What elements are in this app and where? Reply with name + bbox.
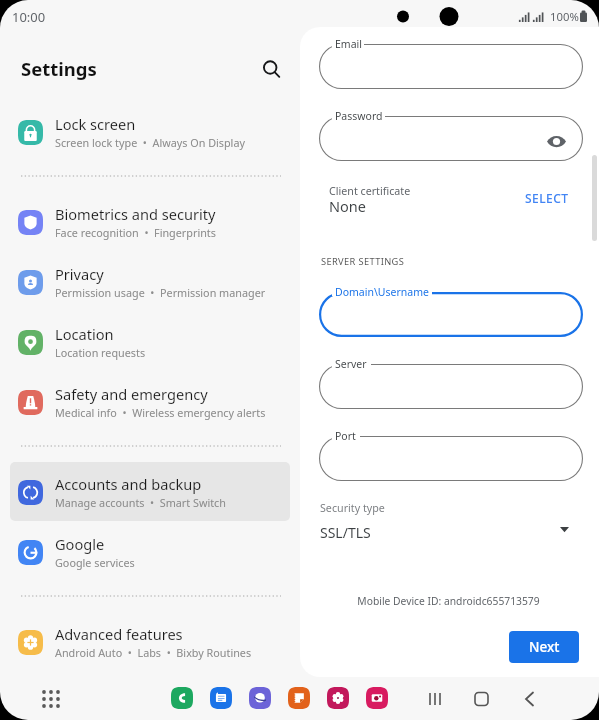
staticText: Biometrics and security [55, 204, 216, 224]
button[interactable]: camera [366, 687, 388, 709]
button[interactable]: Privacy [10, 252, 290, 311]
staticText: Location [55, 324, 114, 344]
button[interactable]: SELECT [521, 186, 573, 210]
button[interactable]: Server [319, 364, 583, 409]
staticText: Location requests [55, 345, 146, 360]
staticText: SELECT [525, 190, 569, 206]
staticText: Screen lock type • Always On Display [55, 135, 245, 150]
button[interactable]: Location [10, 312, 290, 371]
staticText: Lock screen [55, 114, 136, 134]
staticText: None [329, 196, 366, 216]
button[interactable]: notes [288, 687, 310, 709]
staticText: Face recognition • Fingerprints [55, 225, 216, 240]
staticText: Accounts and backup [55, 474, 202, 494]
staticText: 10:00 [12, 8, 46, 26]
staticText: Settings [21, 56, 97, 81]
button[interactable]: Accounts and backup [10, 462, 290, 521]
staticText: Password [335, 109, 383, 123]
button[interactable]: Domain\Username [319, 292, 583, 337]
button[interactable]: Email [319, 44, 583, 89]
button[interactable]: Search [254, 50, 290, 86]
other: Show password [547, 132, 566, 151]
button[interactable]: store [327, 687, 349, 709]
staticText: Port [335, 429, 356, 443]
staticText: Google [55, 534, 105, 554]
button[interactable]: Next [509, 631, 579, 663]
staticText: Permission usage • Permission manager [55, 285, 266, 300]
staticText: Advanced features [55, 624, 183, 644]
staticText: Mobile Device ID: androidc655713579 [300, 594, 597, 608]
button[interactable]: Biometrics and security [10, 192, 290, 251]
button[interactable]: phone [171, 687, 193, 709]
button[interactable]: message [210, 687, 232, 709]
staticText: Security type [320, 501, 385, 516]
button[interactable]: Password [319, 116, 583, 161]
button[interactable]: Google [10, 522, 290, 581]
staticText: Safety and emergency [55, 384, 208, 404]
staticText: Privacy [55, 264, 104, 284]
staticText: SSL/TLS [320, 523, 371, 542]
staticText: Android Auto • Labs • Bixby Routines [55, 645, 252, 660]
button[interactable]: Port [319, 436, 583, 481]
staticText: Server [335, 357, 367, 371]
button[interactable]: Lock screen [10, 102, 290, 161]
staticText: Medical info • Wireless emergency alerts [55, 405, 266, 420]
staticText: Domain\Username [335, 285, 429, 299]
button[interactable]: internet [249, 687, 271, 709]
staticText: Email [335, 37, 362, 51]
staticText: Manage accounts • Smart Switch [55, 495, 226, 510]
button[interactable]: Safety and emergency [10, 372, 290, 431]
staticText: SERVER SETTINGS [321, 255, 405, 268]
other: Open security type menu [560, 527, 570, 537]
staticText: Google services [55, 555, 135, 570]
staticText: 100% [550, 9, 579, 24]
staticText: Next [529, 638, 560, 656]
button[interactable]: Advanced features [10, 612, 290, 671]
staticText: Client certificate [329, 184, 411, 199]
